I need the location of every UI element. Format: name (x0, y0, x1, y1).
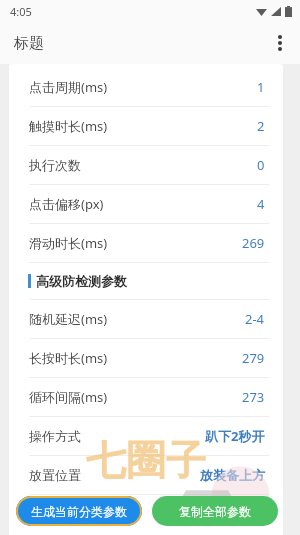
button[interactable]: More options (260, 23, 300, 63)
button[interactable]: 放置位置 (9, 456, 283, 494)
staticText: 放装备上方 (200, 467, 265, 483)
staticText: 279 (242, 349, 265, 367)
staticText: 复制全部参数 (179, 504, 251, 519)
button[interactable]: 点击偏移(px) (9, 185, 283, 223)
staticText: 点击偏移(px) (29, 195, 104, 213)
staticText: 269 (242, 234, 265, 252)
staticText: 生成当前分类参数 (31, 504, 127, 519)
button[interactable]: 点击周期(ms) (9, 68, 283, 106)
button[interactable]: 长按时长(ms) (9, 339, 283, 377)
staticText: 触摸时长(ms) (29, 117, 108, 135)
button[interactable]: 触摸时长(ms) (9, 107, 283, 145)
staticText: 七圈子 (86, 435, 206, 485)
staticText: 标题 (14, 34, 44, 53)
staticText: 1 (257, 78, 265, 96)
button[interactable]: 生成当前分类参数 (16, 496, 142, 526)
button[interactable]: 操作方式 (9, 417, 283, 455)
button[interactable]: 循环间隔(ms) (9, 378, 283, 416)
staticText: 循环间隔(ms) (29, 388, 108, 406)
staticText: 高级防检测参数 (36, 273, 127, 289)
button[interactable]: 滑动时长(ms) (9, 224, 283, 262)
staticText: 273 (242, 388, 265, 406)
staticText: 0 (257, 156, 265, 174)
staticText: 4 (257, 195, 265, 213)
staticText: 滑动时长(ms) (29, 234, 108, 252)
staticText: 长按时长(ms) (29, 349, 108, 367)
button[interactable]: 复制全部参数 (152, 496, 278, 526)
staticText: 放置位置 (29, 467, 81, 483)
staticText: 2 (257, 117, 265, 135)
staticText: 随机延迟(ms) (29, 310, 108, 328)
staticText: 趴下2秒开 (205, 427, 265, 445)
staticText: 4:05 (10, 4, 32, 19)
staticText: 操作方式 (29, 428, 81, 444)
button[interactable]: 随机延迟(ms) (9, 300, 283, 338)
button[interactable]: 执行次数 (9, 146, 283, 184)
staticText: 点击周期(ms) (29, 78, 108, 96)
staticText: 执行次数 (29, 157, 81, 173)
staticText: 2-4 (245, 310, 265, 328)
